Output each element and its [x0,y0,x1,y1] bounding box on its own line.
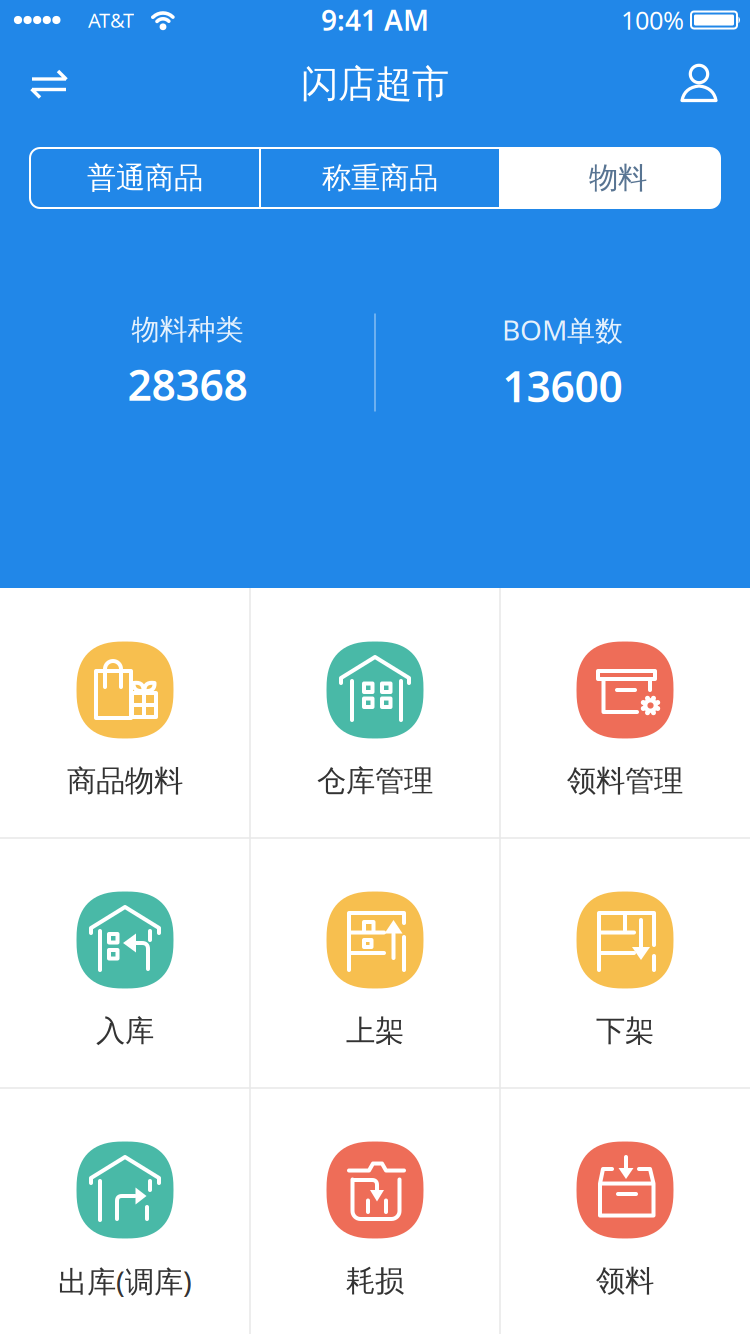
staticText: 耗损 [346,1263,404,1299]
staticText: 领料 [596,1263,654,1299]
staticText: AT&T [88,7,134,33]
staticText: 物料 [589,160,647,196]
button[interactable]: 下架 [500,838,750,1088]
staticText: 入库 [96,1013,154,1049]
button[interactable]: 物料 [509,148,727,208]
staticText: 商品物料 [67,763,183,799]
staticText: 9:41 AM [321,1,429,39]
button[interactable]: 我的 [677,62,721,106]
button[interactable]: 领料管理 [500,588,750,838]
staticText: 下架 [596,1013,654,1049]
button[interactable]: 称重商品 [262,148,498,208]
staticText: 13600 [502,357,622,414]
button[interactable]: 仓库管理 [250,588,500,838]
button[interactable]: 耗损 [250,1088,500,1334]
staticText: 出库(调库) [58,1261,192,1300]
button[interactable]: 入库 [0,838,250,1088]
button[interactable]: 领料 [500,1088,750,1334]
button[interactable]: 上架 [250,838,500,1088]
button[interactable]: 商品物料 [0,588,250,838]
staticText: 物料种类 [131,312,243,347]
staticText: 称重商品 [322,160,438,196]
staticText: 领料管理 [567,763,683,799]
button[interactable]: 普通商品 [31,148,259,208]
button[interactable]: 切换 [27,62,71,106]
staticText: 普通商品 [87,160,203,196]
staticText: 仓库管理 [317,763,433,799]
staticText: 28368 [127,356,247,413]
button[interactable]: 出库(调库) [0,1088,250,1334]
staticText: 闪店超市 [301,61,449,107]
staticText: BOM单数 [502,311,623,348]
staticText: 上架 [346,1013,404,1049]
staticText: 100% [621,3,684,37]
